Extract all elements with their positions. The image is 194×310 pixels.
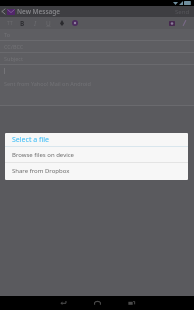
staticText: CC/BCC xyxy=(4,43,24,50)
staticText: Sent from Yahoo! Mail on Android xyxy=(4,80,91,87)
button[interactable]: Browse files on device xyxy=(5,147,188,162)
button[interactable]: Home xyxy=(87,296,107,310)
staticText: Send xyxy=(175,8,190,16)
button[interactable]: Bold xyxy=(16,17,29,29)
button[interactable]: Text color xyxy=(55,17,68,29)
staticText: I xyxy=(34,19,37,28)
staticText: Share from Dropbox xyxy=(12,167,70,175)
staticText: Subject xyxy=(4,55,23,62)
button[interactable]: Share from Dropbox xyxy=(5,163,188,178)
staticText: Select a file xyxy=(12,135,49,145)
button[interactable]: Camera xyxy=(165,17,178,29)
button[interactable]: Send xyxy=(171,7,194,17)
button[interactable]: Emoji xyxy=(68,17,81,29)
button[interactable]: Recent apps xyxy=(121,296,141,310)
staticText: U xyxy=(46,19,51,28)
button[interactable]: Back xyxy=(53,296,73,310)
staticText: To xyxy=(4,31,11,38)
button[interactable]: Back xyxy=(0,6,7,17)
staticText: Browse files on device xyxy=(12,151,74,159)
staticText: New Message xyxy=(17,7,61,16)
button[interactable]: Attach xyxy=(178,17,191,29)
staticText: B xyxy=(20,19,25,28)
staticText: TT xyxy=(7,20,13,27)
